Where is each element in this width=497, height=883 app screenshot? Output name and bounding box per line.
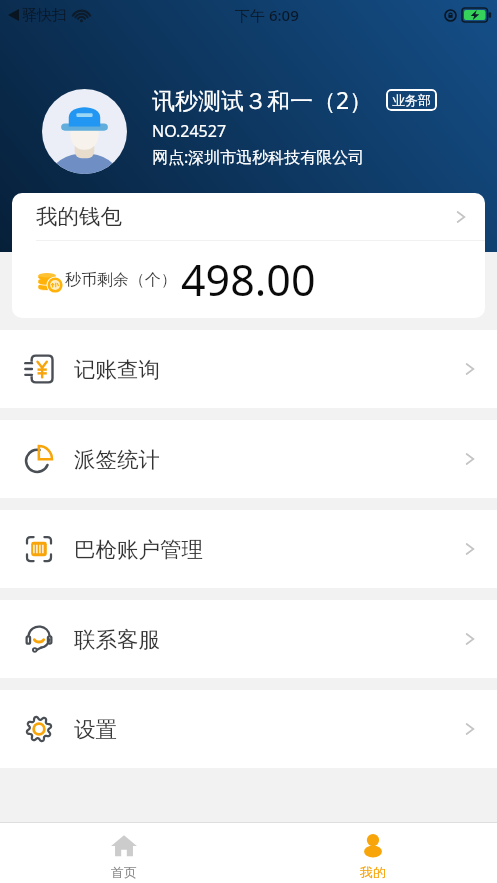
staticText: 设置 (74, 716, 117, 743)
button[interactable]: 我的钱包 (12, 193, 485, 240)
staticText: 讯秒测试３和一（2） (152, 84, 373, 115)
button[interactable]: 记账查询 (0, 330, 497, 408)
button[interactable]: 联系客服 (0, 600, 497, 678)
staticText: 记账查询 (74, 356, 160, 383)
staticText: 首页 (111, 864, 137, 880)
staticText: NO.24527 (152, 120, 227, 142)
staticText: 派签统计 (74, 446, 160, 473)
button[interactable]: 派签统计 (0, 420, 497, 498)
staticText: 联系客服 (74, 626, 160, 653)
staticText: 业务部 (392, 92, 431, 108)
button[interactable]: 设置 (0, 690, 497, 768)
staticText: 我的 (360, 864, 386, 880)
staticText: 498.00 (181, 250, 316, 309)
staticText: 驿快扫 (22, 6, 67, 25)
button[interactable]: 我的 (248, 823, 497, 880)
staticText: 下午 6:09 (235, 5, 299, 25)
button[interactable]: 巴枪账户管理 (0, 510, 497, 588)
button[interactable]: 首页 (0, 823, 248, 880)
staticText: 秒币剩余（个） (65, 270, 177, 290)
staticText: 网点:深圳市迅秒科技有限公司 (152, 146, 365, 168)
staticText: 我的钱包 (36, 203, 122, 230)
staticText: 巴枪账户管理 (74, 536, 203, 563)
